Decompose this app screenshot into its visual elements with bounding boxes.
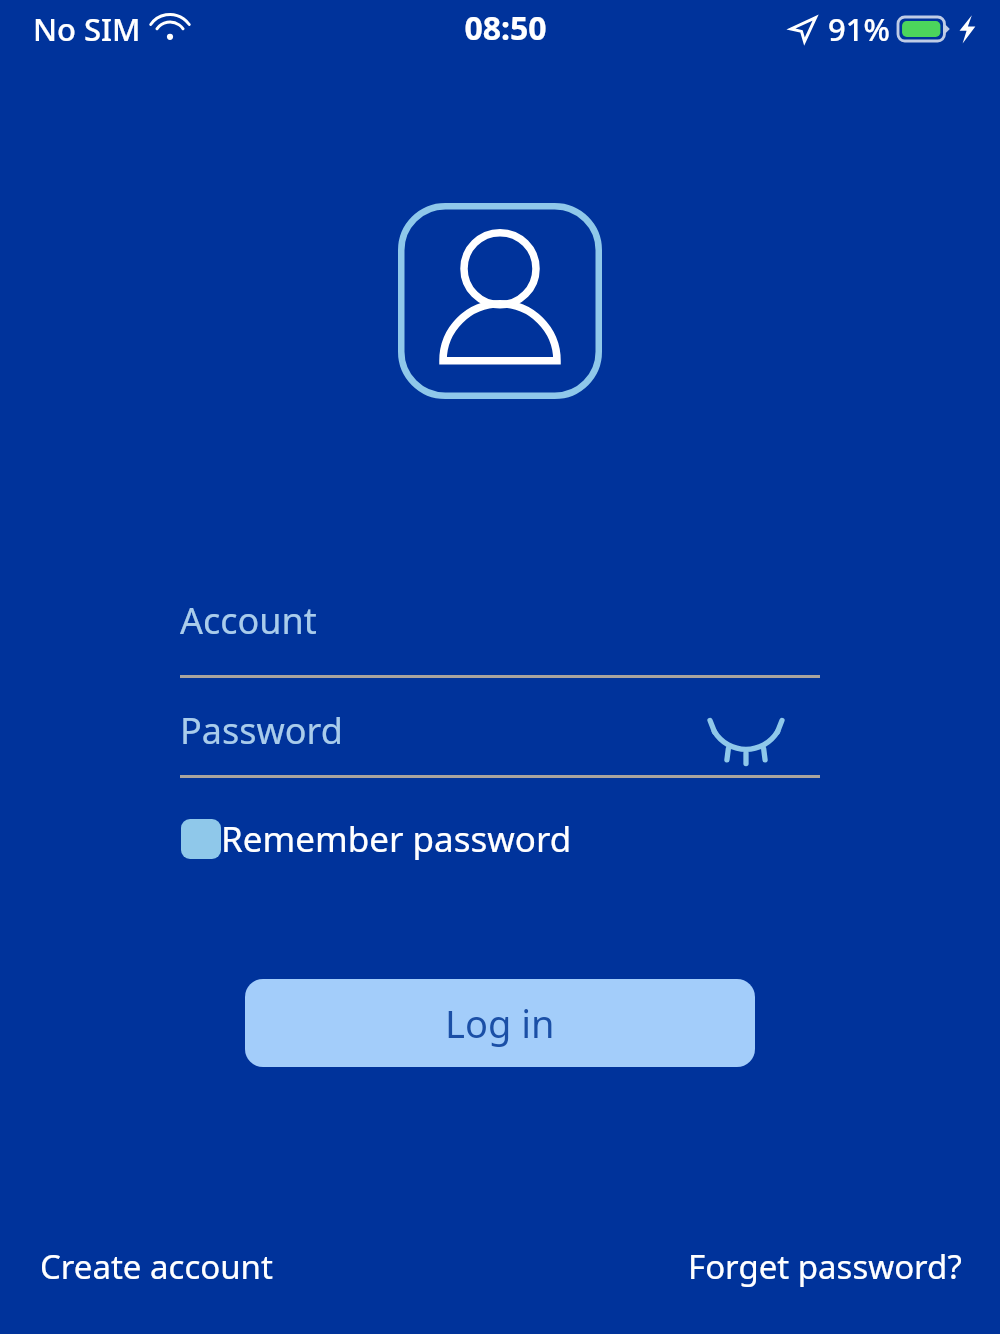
staticText: Account bbox=[180, 596, 317, 645]
button[interactable]: Password bbox=[180, 700, 820, 778]
button[interactable]: Show password bbox=[700, 702, 792, 770]
staticText: Log in bbox=[445, 997, 555, 1049]
button[interactable]: Forget password? bbox=[688, 1240, 962, 1292]
staticText: No SIM bbox=[33, 8, 141, 50]
button[interactable]: Create account bbox=[40, 1240, 273, 1292]
button[interactable]: Remember password bbox=[181, 815, 572, 863]
staticText: 08:50 bbox=[464, 6, 547, 50]
staticText: Forget password? bbox=[688, 1244, 962, 1289]
button[interactable]: Account bbox=[180, 592, 820, 678]
staticText: 91% bbox=[828, 8, 890, 50]
button[interactable]: Log in bbox=[245, 979, 755, 1067]
staticText: Remember password bbox=[221, 815, 572, 863]
staticText: Create account bbox=[40, 1244, 273, 1289]
staticText: Password bbox=[180, 706, 343, 755]
